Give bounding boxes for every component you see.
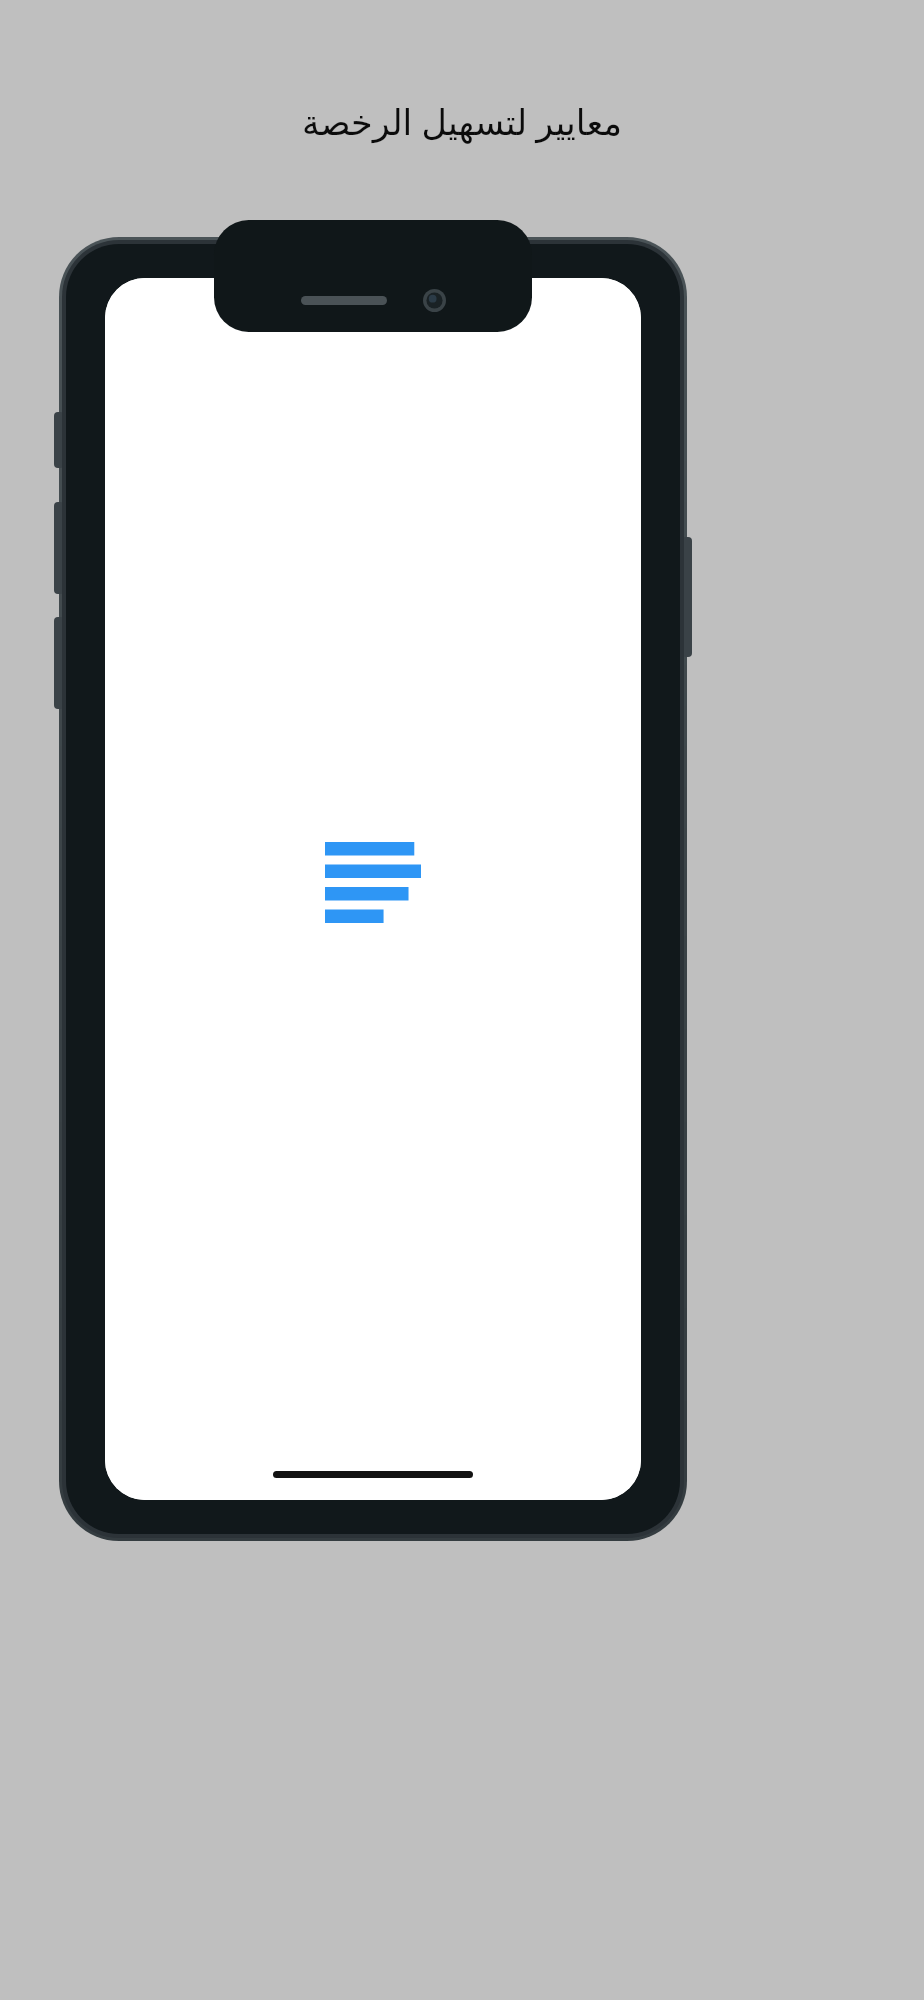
button[interactable]: Loading	[325, 842, 421, 926]
staticText: معايير لتسهيل الرخصة	[0, 98, 924, 146]
